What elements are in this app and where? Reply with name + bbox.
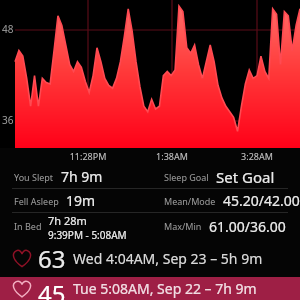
staticText: Wed 4:04AM, Sep 23 – 5h 9m [73, 249, 263, 268]
staticText: 7h 9m [61, 167, 103, 186]
staticText: Sleep Goal [164, 171, 209, 183]
staticText: Tue 5:08AM, Sep 22 – 7h 9m [73, 279, 257, 298]
button[interactable]: Mean/Mode [150, 189, 300, 212]
staticText: Set Goal [216, 167, 275, 187]
button[interactable]: Heart rate [0, 277, 300, 300]
button[interactable]: In Bed [0, 213, 150, 239]
button[interactable]: Max/Min [150, 213, 300, 239]
staticText: 7h 28m [48, 213, 87, 228]
staticText: 63 [38, 242, 66, 275]
staticText: You Slept [14, 171, 54, 183]
staticText: 9:39PM - 5:08AM [48, 228, 127, 239]
staticText: Mean/Mode [164, 195, 216, 207]
staticText: Fell Asleep [14, 195, 59, 207]
staticText: 36 [2, 113, 14, 127]
staticText: 19m [66, 191, 96, 210]
other: Heart rate [10, 277, 34, 300]
button[interactable]: Sleep Goal [150, 165, 300, 188]
button[interactable]: You Slept [0, 165, 150, 188]
staticText: 11:28PM [62, 150, 114, 162]
staticText: 1:38AM [146, 150, 198, 162]
button[interactable]: Heart rate [0, 239, 300, 277]
staticText: 61.00/36.00 [209, 217, 286, 236]
staticText: 45.20/42.00 [223, 191, 300, 210]
staticText: In Bed [14, 220, 42, 232]
staticText: 3:28AM [231, 150, 283, 162]
staticText: Max/Min [164, 220, 202, 232]
button[interactable]: Fell Asleep [0, 189, 150, 212]
other: Heart rate [10, 246, 34, 270]
staticText: 48 [2, 22, 14, 36]
staticText: 45 [38, 277, 66, 300]
